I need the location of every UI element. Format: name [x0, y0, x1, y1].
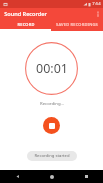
staticText: 00:01: [36, 60, 68, 77]
button[interactable]: Back: [0, 170, 35, 183]
staticText: Recording...: [40, 100, 64, 106]
button[interactable]: Recent apps: [69, 170, 103, 183]
staticText: RECORD: [17, 22, 35, 27]
button[interactable]: Home: [35, 170, 69, 183]
staticText: SAVED RECORDINGS: [56, 22, 98, 27]
button[interactable]: RECORD: [0, 20, 51, 29]
button[interactable]: Stop recording: [43, 117, 60, 134]
button[interactable]: SAVED RECORDINGS: [51, 20, 103, 29]
staticText: Recording started: [34, 153, 70, 159]
button[interactable]: More options: [92, 8, 103, 20]
staticText: Sound Recorder: [4, 10, 47, 18]
staticText: 7:54: [92, 1, 101, 7]
